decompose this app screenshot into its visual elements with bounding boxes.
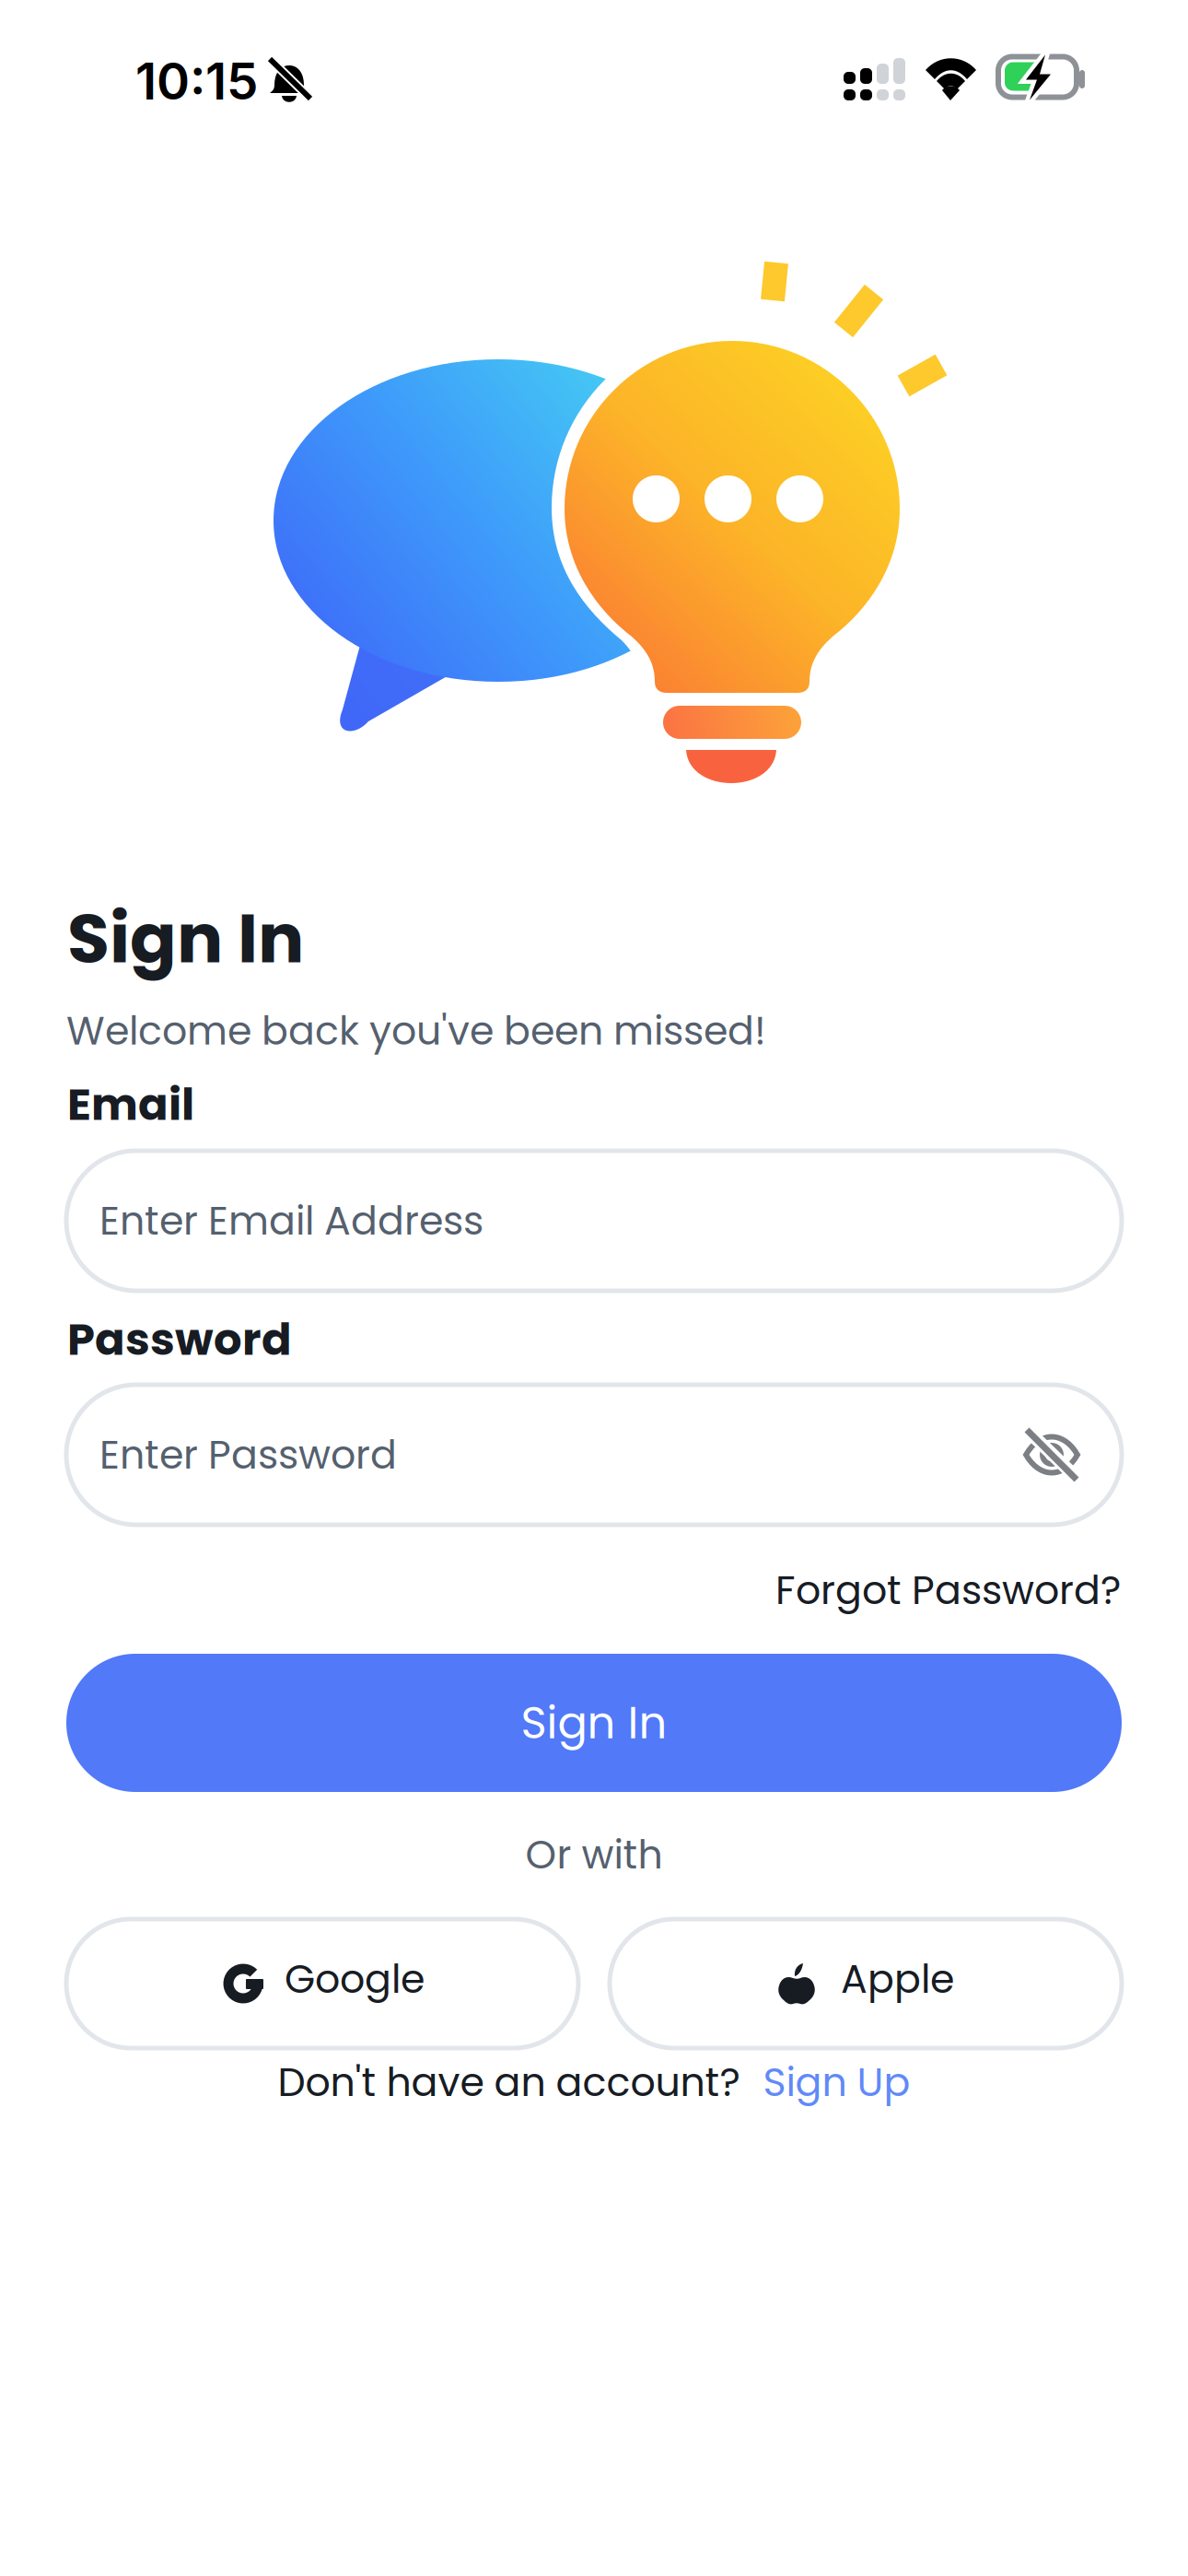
- staticText: Sign Up: [763, 2055, 910, 2110]
- button[interactable]: Forgot Password?: [65, 1563, 1121, 1617]
- button[interactable]: Apple: [610, 1919, 1122, 2048]
- staticText: 10:15: [135, 51, 258, 112]
- staticText: Google: [285, 1951, 425, 2006]
- staticText: Don't have an account?: [278, 2055, 740, 2110]
- staticText: Sign In: [521, 1692, 667, 1754]
- staticText: Forgot Password?: [775, 1563, 1121, 1618]
- staticText: Email: [67, 1073, 194, 1135]
- staticText: Sign In: [67, 890, 304, 986]
- button[interactable]: Google: [66, 1919, 578, 2048]
- button[interactable]: Sign Up: [763, 2055, 910, 2110]
- staticText: Welcome back you've been missed!: [66, 1003, 766, 1058]
- staticText: Enter Email Address: [99, 1193, 483, 1248]
- staticText: Apple: [841, 1951, 954, 2006]
- staticText: Password: [67, 1308, 292, 1370]
- button[interactable]: Sign In: [66, 1654, 1122, 1792]
- staticText: Or with: [525, 1827, 663, 1882]
- staticText: Enter Password: [99, 1427, 397, 1482]
